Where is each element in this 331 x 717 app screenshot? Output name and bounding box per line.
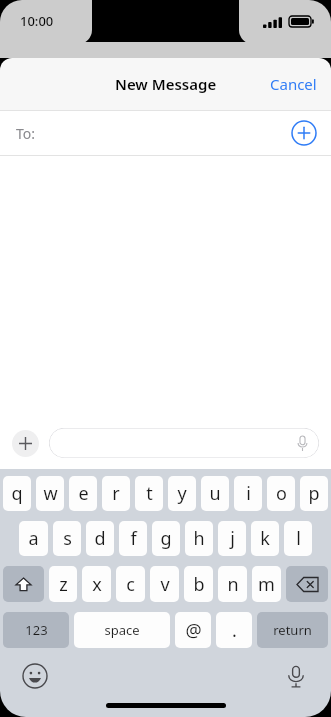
button[interactable]: x: [82, 566, 111, 602]
button[interactable]: f: [119, 521, 147, 556]
staticText: @: [185, 618, 202, 643]
staticText: e: [78, 481, 89, 506]
button[interactable]: Attach: [12, 430, 39, 457]
staticText: l: [296, 526, 301, 551]
staticText: g: [160, 526, 172, 551]
staticText: To:: [16, 124, 36, 143]
staticText: o: [276, 481, 287, 506]
button[interactable]: p: [300, 476, 328, 511]
button[interactable]: q: [3, 476, 31, 511]
staticText: t: [146, 481, 153, 506]
button[interactable]: d: [86, 521, 114, 556]
button[interactable]: return: [257, 612, 328, 648]
staticText: n: [227, 572, 239, 597]
button[interactable]: o: [267, 476, 295, 511]
staticText: b: [193, 572, 205, 597]
button[interactable]: n: [218, 566, 247, 602]
staticText: k: [260, 526, 270, 551]
button[interactable]: Cancel: [256, 64, 331, 104]
staticText: d: [94, 526, 106, 551]
staticText: h: [193, 526, 205, 551]
staticText: 123: [25, 621, 48, 639]
button[interactable]: Emoji: [22, 663, 48, 689]
staticText: q: [11, 481, 23, 506]
button[interactable]: h: [185, 521, 213, 556]
button[interactable]: r: [102, 476, 130, 511]
staticText: v: [160, 572, 170, 597]
button[interactable]: c: [116, 566, 145, 602]
button[interactable]: u: [201, 476, 229, 511]
button[interactable]: .: [216, 612, 252, 648]
staticText: s: [63, 526, 72, 551]
button[interactable]: j: [218, 521, 246, 556]
button[interactable]: 123: [3, 612, 69, 648]
button[interactable]: a: [19, 521, 48, 556]
button[interactable]: l: [284, 521, 312, 556]
staticText: x: [92, 572, 102, 597]
button[interactable]: w: [36, 476, 64, 511]
staticText: j: [230, 526, 235, 551]
button[interactable]: y: [168, 476, 196, 511]
button[interactable]: i: [234, 476, 262, 511]
button[interactable]: m: [252, 566, 281, 602]
staticText: 10:00: [20, 12, 54, 30]
staticText: i: [246, 481, 251, 506]
staticText: z: [59, 572, 68, 597]
button[interactable]: Add contact: [291, 120, 317, 146]
staticText: y: [177, 481, 187, 506]
button[interactable]: b: [184, 566, 213, 602]
button[interactable]: [49, 428, 319, 458]
staticText: .: [232, 618, 237, 643]
button[interactable]: @: [175, 612, 211, 648]
staticText: f: [130, 526, 137, 551]
button[interactable]: k: [251, 521, 279, 556]
button[interactable]: Backspace: [286, 566, 328, 602]
staticText: c: [126, 572, 135, 597]
button[interactable]: v: [150, 566, 179, 602]
staticText: space: [104, 621, 140, 639]
button[interactable]: g: [152, 521, 180, 556]
staticText: m: [258, 572, 275, 597]
staticText: Cancel: [270, 74, 317, 94]
staticText: w: [43, 481, 58, 506]
button[interactable]: Dictation: [283, 663, 309, 689]
staticText: a: [28, 526, 39, 551]
staticText: return: [273, 621, 312, 639]
button[interactable]: Shift: [3, 566, 44, 602]
button[interactable]: z: [49, 566, 77, 602]
staticText: r: [112, 481, 120, 506]
staticText: p: [308, 481, 320, 506]
button[interactable]: space: [74, 612, 170, 648]
staticText: u: [209, 481, 221, 506]
staticText: New Message: [115, 74, 217, 94]
button[interactable]: s: [53, 521, 81, 556]
button[interactable]: e: [69, 476, 97, 511]
button[interactable]: t: [135, 476, 163, 511]
